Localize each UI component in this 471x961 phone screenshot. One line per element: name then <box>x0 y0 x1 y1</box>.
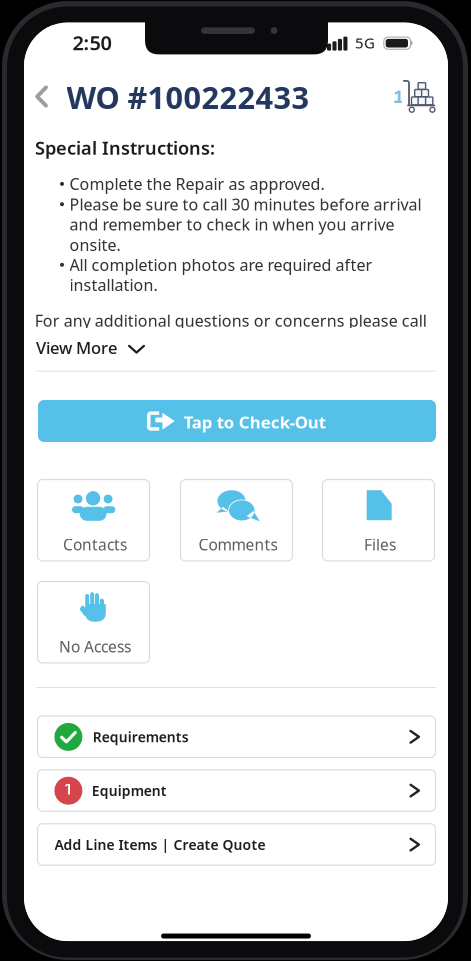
staticText: Tap to Check-Out <box>184 411 326 433</box>
staticText: 2:50 <box>73 29 112 56</box>
staticText: Requirements <box>93 727 189 746</box>
staticText: onsite. <box>69 234 120 256</box>
staticText: Files <box>364 534 396 555</box>
staticText: Add Line Items | Create Quote <box>54 835 265 854</box>
staticText: Comments <box>198 534 277 555</box>
staticText: Equipment <box>92 781 167 800</box>
staticText: No Access <box>59 636 131 657</box>
staticText: and remember to check in when you arrive <box>69 213 394 235</box>
staticText: WO #100222433 <box>66 76 309 118</box>
button[interactable]: Back <box>26 75 60 119</box>
button[interactable]: Comments <box>180 479 293 561</box>
staticText: Contacts <box>63 534 127 555</box>
button[interactable]: Add Line Items | Create Quote <box>37 823 436 866</box>
staticText: Complete the Repair as approved. <box>69 173 324 195</box>
button[interactable]: Requirements <box>37 715 436 758</box>
button[interactable]: Files <box>322 479 435 561</box>
button[interactable]: Materials <box>390 75 438 117</box>
staticText: 1 <box>64 778 73 799</box>
staticText: installation. <box>69 274 157 296</box>
staticText: All completion photos are required after <box>69 254 372 276</box>
button[interactable]: Contacts <box>37 479 150 561</box>
staticText: For any additional questions or concerns… <box>35 310 427 331</box>
staticText: Special Instructions: <box>35 135 215 160</box>
button[interactable]: No Access <box>37 581 150 663</box>
staticText: View More <box>36 336 117 359</box>
staticText: 5G <box>355 33 375 53</box>
staticText: Please be sure to call 30 minutes before… <box>69 193 421 215</box>
button[interactable]: 1 <box>37 769 436 812</box>
button[interactable]: Tap to Check-Out <box>38 400 436 442</box>
button[interactable]: View More <box>35 337 180 377</box>
